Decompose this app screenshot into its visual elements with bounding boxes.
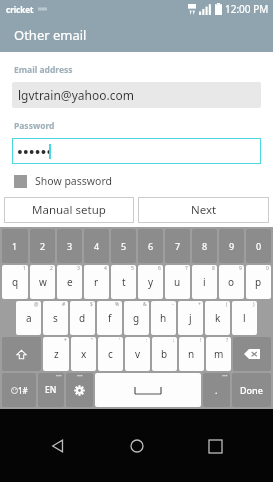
button[interactable]: p bbox=[246, 265, 271, 299]
staticText: Password bbox=[14, 120, 55, 132]
button[interactable]: f bbox=[97, 301, 122, 335]
staticText: q bbox=[12, 275, 19, 289]
button[interactable]: Back bbox=[38, 426, 78, 466]
staticText: * bbox=[64, 337, 67, 344]
button[interactable]: 3 bbox=[57, 229, 82, 263]
button[interactable]: y bbox=[138, 265, 163, 299]
button[interactable]: r bbox=[84, 265, 109, 299]
staticText: EN bbox=[45, 384, 57, 396]
button[interactable]: t bbox=[111, 265, 136, 299]
button[interactable]: b bbox=[152, 337, 177, 371]
staticText: 1# bbox=[18, 385, 28, 396]
staticText: n bbox=[188, 347, 195, 361]
staticText: g bbox=[133, 311, 140, 325]
button[interactable]: Shift bbox=[2, 337, 41, 371]
staticText: m bbox=[214, 347, 224, 361]
button[interactable]: n bbox=[179, 337, 204, 371]
staticText: 4 bbox=[104, 265, 107, 272]
button[interactable]: h bbox=[151, 301, 176, 335]
staticText: Show password bbox=[35, 174, 112, 188]
button[interactable]: w bbox=[30, 265, 55, 299]
button[interactable]: 5 bbox=[111, 229, 136, 263]
button[interactable]: Symbols bbox=[2, 373, 36, 407]
staticText: @ bbox=[34, 301, 39, 308]
button[interactable]: g bbox=[124, 301, 149, 335]
button[interactable] bbox=[12, 138, 261, 164]
button[interactable]: Backspace bbox=[233, 337, 271, 371]
staticText: i bbox=[203, 275, 206, 289]
staticText: 4 bbox=[94, 240, 100, 252]
staticText: v bbox=[135, 347, 141, 361]
button[interactable]: 6 bbox=[138, 229, 163, 263]
staticText: ! bbox=[200, 337, 202, 344]
button[interactable]: 0 bbox=[246, 229, 271, 263]
button[interactable]: u bbox=[165, 265, 190, 299]
staticText: ? bbox=[226, 337, 229, 344]
button[interactable]: s bbox=[43, 301, 68, 335]
staticText: 7 bbox=[185, 265, 188, 272]
button[interactable]: z bbox=[43, 337, 69, 371]
button[interactable]: o bbox=[219, 265, 244, 299]
staticText: r bbox=[94, 275, 99, 289]
button[interactable]: 4 bbox=[84, 229, 109, 263]
staticText: 9 bbox=[239, 265, 242, 272]
button[interactable]: EN bbox=[38, 373, 64, 407]
staticText: k bbox=[215, 311, 221, 325]
button[interactable]: Settings bbox=[66, 373, 93, 407]
button[interactable]: Done bbox=[232, 373, 271, 407]
staticText: 7 bbox=[175, 240, 181, 252]
button[interactable]: i bbox=[192, 265, 217, 299]
button[interactable]: m bbox=[206, 337, 231, 371]
staticText: b bbox=[161, 347, 168, 361]
button[interactable]: l bbox=[232, 301, 257, 335]
staticText: p bbox=[255, 275, 262, 289]
button[interactable]: v bbox=[125, 337, 150, 371]
staticText: j bbox=[189, 311, 192, 325]
staticText: d bbox=[79, 311, 86, 325]
staticText: 2 bbox=[40, 240, 46, 252]
staticText: t bbox=[122, 275, 126, 289]
staticText: y bbox=[148, 275, 154, 289]
staticText: ••• bbox=[56, 373, 62, 380]
button[interactable]: a bbox=[16, 301, 41, 335]
staticText: z bbox=[54, 347, 59, 361]
button[interactable]: . bbox=[203, 373, 230, 407]
staticText: Manual setup bbox=[32, 202, 106, 218]
button[interactable]: lgvtrain@yahoo.com bbox=[12, 82, 261, 108]
staticText: " bbox=[91, 337, 94, 344]
button[interactable]: Show password bbox=[14, 174, 112, 188]
staticText: 1 bbox=[12, 240, 18, 252]
button[interactable]: 7 bbox=[165, 229, 190, 263]
button[interactable]: q bbox=[2, 265, 28, 299]
button[interactable]: Manual setup bbox=[4, 197, 134, 223]
staticText: . bbox=[215, 384, 218, 396]
button[interactable]: c bbox=[98, 337, 123, 371]
button[interactable]: 9 bbox=[219, 229, 244, 263]
staticText: # bbox=[62, 301, 66, 308]
button[interactable]: x bbox=[71, 337, 96, 371]
staticText: ) bbox=[253, 301, 255, 308]
staticText: 6 bbox=[158, 265, 161, 272]
staticText: h bbox=[160, 311, 167, 325]
button[interactable]: j bbox=[178, 301, 203, 335]
staticText: Email address bbox=[14, 64, 73, 76]
button[interactable]: Recent apps bbox=[195, 426, 235, 466]
staticText: : bbox=[146, 337, 148, 344]
button[interactable]: e bbox=[57, 265, 82, 299]
button[interactable]: Next bbox=[138, 197, 269, 223]
staticText: 0 bbox=[266, 265, 269, 272]
staticText: cricket bbox=[6, 4, 34, 15]
button[interactable]: 1 bbox=[2, 229, 28, 263]
staticText: ' bbox=[119, 337, 121, 344]
button[interactable]: Space bbox=[95, 373, 201, 407]
button[interactable]: 2 bbox=[30, 229, 55, 263]
button[interactable]: 8 bbox=[192, 229, 217, 263]
staticText: - bbox=[172, 301, 174, 308]
staticText: ••• bbox=[77, 373, 83, 380]
button[interactable]: k bbox=[205, 301, 230, 335]
button[interactable]: d bbox=[70, 301, 95, 335]
staticText: Done bbox=[240, 384, 263, 396]
staticText: ••• bbox=[222, 373, 228, 380]
staticText: 9 bbox=[229, 240, 235, 252]
button[interactable]: Home bbox=[117, 426, 157, 466]
